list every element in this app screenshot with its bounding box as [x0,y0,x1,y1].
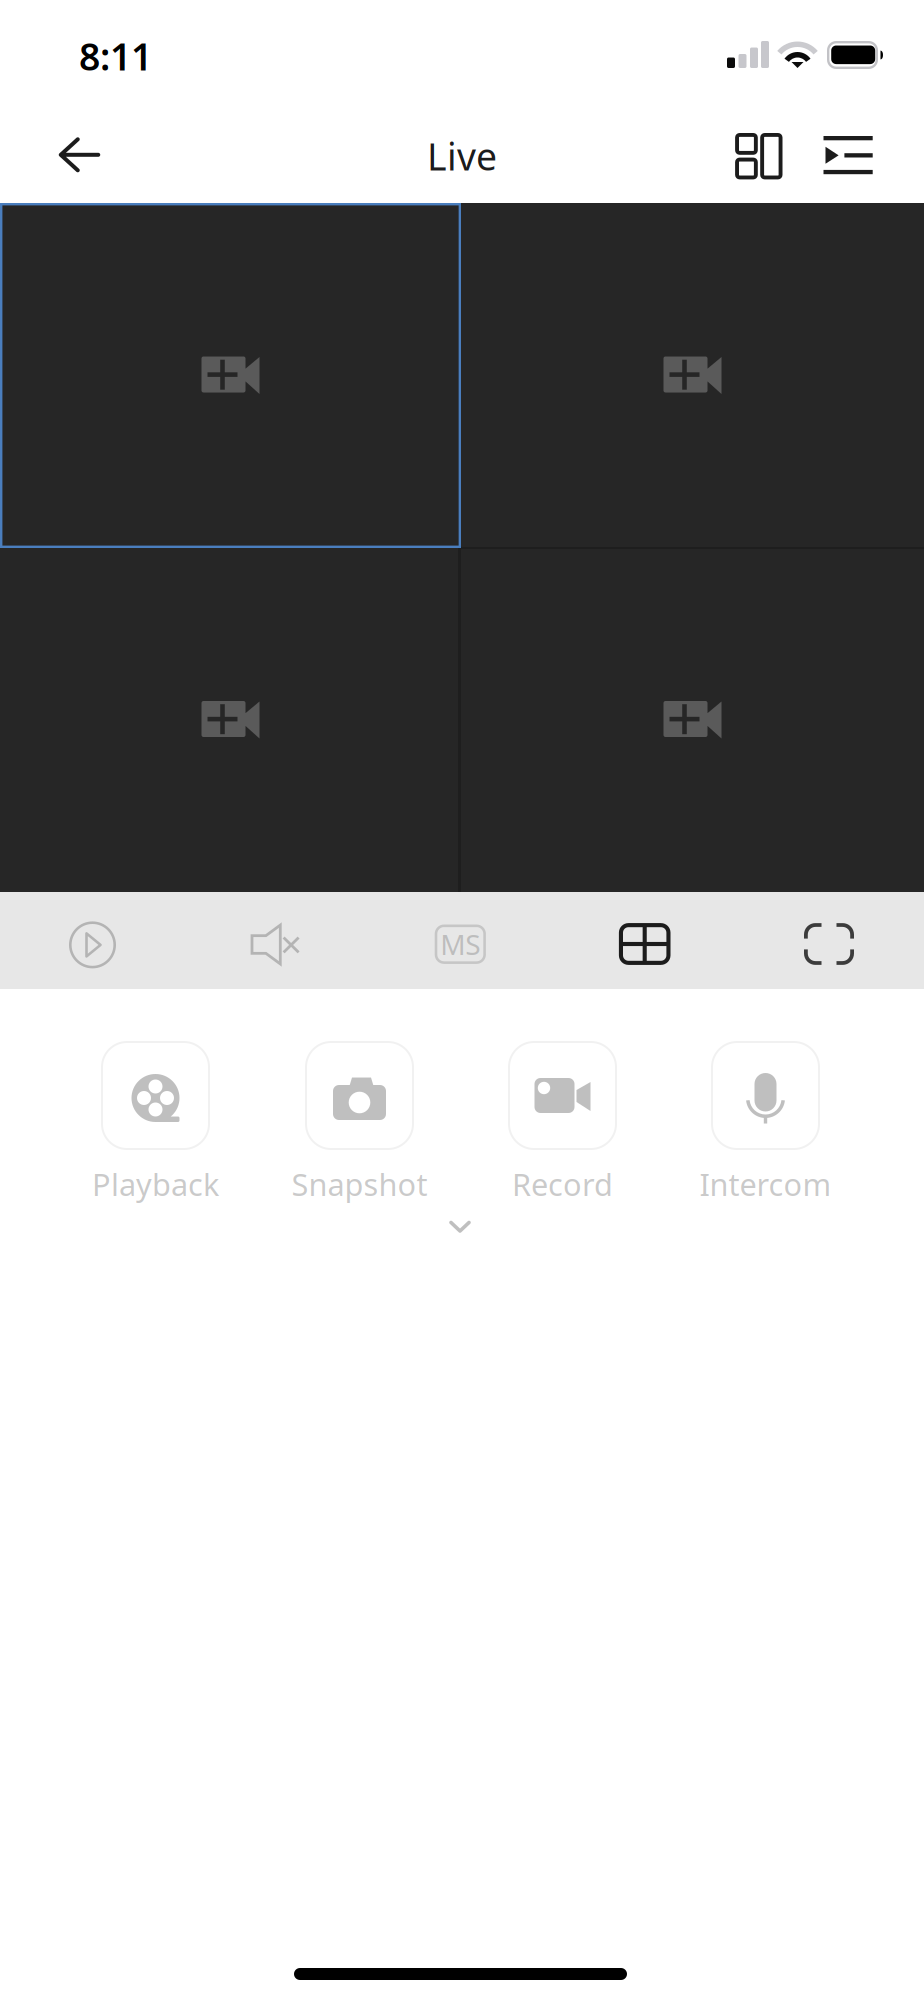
button[interactable]: Add camera to channel 3 [0,0,924,2000]
button[interactable]: Main stream [0,0,924,2000]
button[interactable]: Record [0,0,924,2000]
button[interactable]: Snapshot [0,0,924,2000]
button[interactable]: Playback [0,0,924,2000]
staticText: 8:11 [79,31,152,81]
button[interactable]: Split layout [0,0,924,2000]
button[interactable]: Grid layout [0,0,924,2000]
staticText: Intercom [699,1164,831,1204]
staticText: Playback [92,1164,219,1204]
button[interactable]: Playlist [0,0,924,2000]
staticText: Snapshot [291,1164,427,1204]
button[interactable]: Play [0,0,924,2000]
staticText: Record [512,1164,613,1204]
button[interactable]: Full screen [0,0,924,2000]
button[interactable]: Collapse [0,0,924,2000]
button[interactable]: Add camera to channel 4 [0,0,924,2000]
button[interactable]: Add camera to channel 2 [0,0,924,2000]
button[interactable]: Intercom [0,0,924,2000]
button[interactable]: Add camera to channel 1 [0,0,924,2000]
staticText: MS [440,926,480,963]
button[interactable]: Back [0,0,924,2000]
staticText: Live [427,131,497,181]
button[interactable]: Mute [0,0,924,2000]
